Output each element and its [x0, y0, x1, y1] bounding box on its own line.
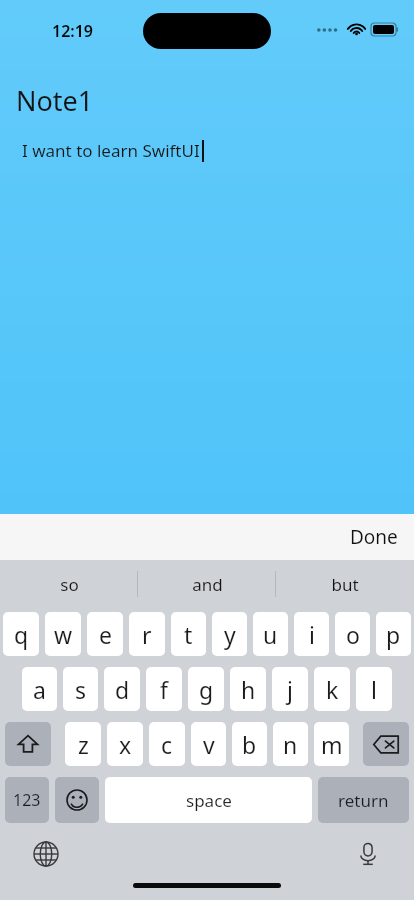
button[interactable]: Dictate: [350, 836, 386, 872]
staticText: l: [371, 674, 377, 705]
staticText: m: [321, 729, 343, 760]
staticText: v: [203, 729, 215, 760]
button[interactable]: z: [65, 722, 101, 766]
button[interactable]: Shift: [5, 722, 51, 766]
button[interactable]: u: [253, 612, 288, 656]
button[interactable]: a: [22, 667, 57, 711]
staticText: t: [184, 619, 193, 650]
staticText: z: [78, 729, 89, 760]
staticText: and: [192, 573, 223, 596]
staticText: 123: [13, 789, 41, 811]
staticText: but: [331, 573, 359, 596]
button[interactable]: i: [294, 612, 329, 656]
staticText: Note1: [16, 82, 94, 119]
button[interactable]: 123: [5, 777, 49, 823]
staticText: q: [14, 619, 29, 650]
staticText: r: [142, 619, 152, 650]
button[interactable]: d: [104, 667, 140, 711]
button[interactable]: m: [314, 722, 349, 766]
button[interactable]: p: [376, 612, 411, 656]
button[interactable]: l: [356, 667, 392, 711]
button[interactable]: t: [171, 612, 206, 656]
button[interactable]: Done: [334, 516, 414, 558]
button[interactable]: h: [230, 667, 266, 711]
staticText: space: [186, 789, 232, 812]
staticText: c: [161, 729, 173, 760]
button[interactable]: but: [276, 560, 414, 608]
button[interactable]: e: [87, 612, 123, 656]
staticText: I want to learn SwiftUI: [22, 139, 200, 162]
button[interactable]: b: [232, 722, 267, 766]
staticText: o: [346, 619, 360, 650]
button[interactable]: return: [318, 777, 409, 823]
button[interactable]: x: [107, 722, 143, 766]
button[interactable]: space: [105, 777, 312, 823]
button[interactable]: so: [0, 560, 138, 608]
button[interactable]: q: [3, 612, 39, 656]
staticText: e: [99, 619, 112, 650]
button[interactable]: Emoji: [55, 777, 99, 823]
button[interactable]: o: [335, 612, 370, 656]
button[interactable]: Change keyboard: [28, 836, 64, 872]
staticText: x: [119, 729, 132, 760]
staticText: 12:19: [52, 20, 94, 42]
staticText: k: [326, 674, 339, 705]
button[interactable]: j: [272, 667, 308, 711]
staticText: p: [386, 619, 401, 650]
button[interactable]: and: [138, 560, 276, 608]
staticText: b: [242, 729, 257, 760]
staticText: f: [160, 674, 168, 705]
staticText: a: [33, 674, 46, 705]
button[interactable]: s: [63, 667, 98, 711]
button[interactable]: r: [129, 612, 165, 656]
button[interactable]: y: [212, 612, 247, 656]
staticText: so: [60, 573, 79, 596]
button[interactable]: c: [149, 722, 185, 766]
staticText: n: [283, 729, 298, 760]
button[interactable]: v: [191, 722, 226, 766]
staticText: Done: [350, 524, 398, 550]
button[interactable]: f: [146, 667, 182, 711]
staticText: y: [224, 619, 236, 650]
staticText: return: [338, 789, 389, 812]
staticText: u: [263, 619, 278, 650]
button[interactable]: w: [45, 612, 81, 656]
button[interactable]: n: [273, 722, 308, 766]
button[interactable]: Backspace: [363, 722, 409, 766]
button[interactable]: k: [314, 667, 350, 711]
button[interactable]: g: [188, 667, 224, 711]
staticText: w: [54, 619, 73, 650]
staticText: j: [287, 674, 293, 705]
staticText: h: [241, 674, 256, 705]
staticText: d: [115, 674, 130, 705]
staticText: s: [75, 674, 87, 705]
staticText: i: [309, 619, 315, 650]
staticText: g: [199, 674, 214, 705]
